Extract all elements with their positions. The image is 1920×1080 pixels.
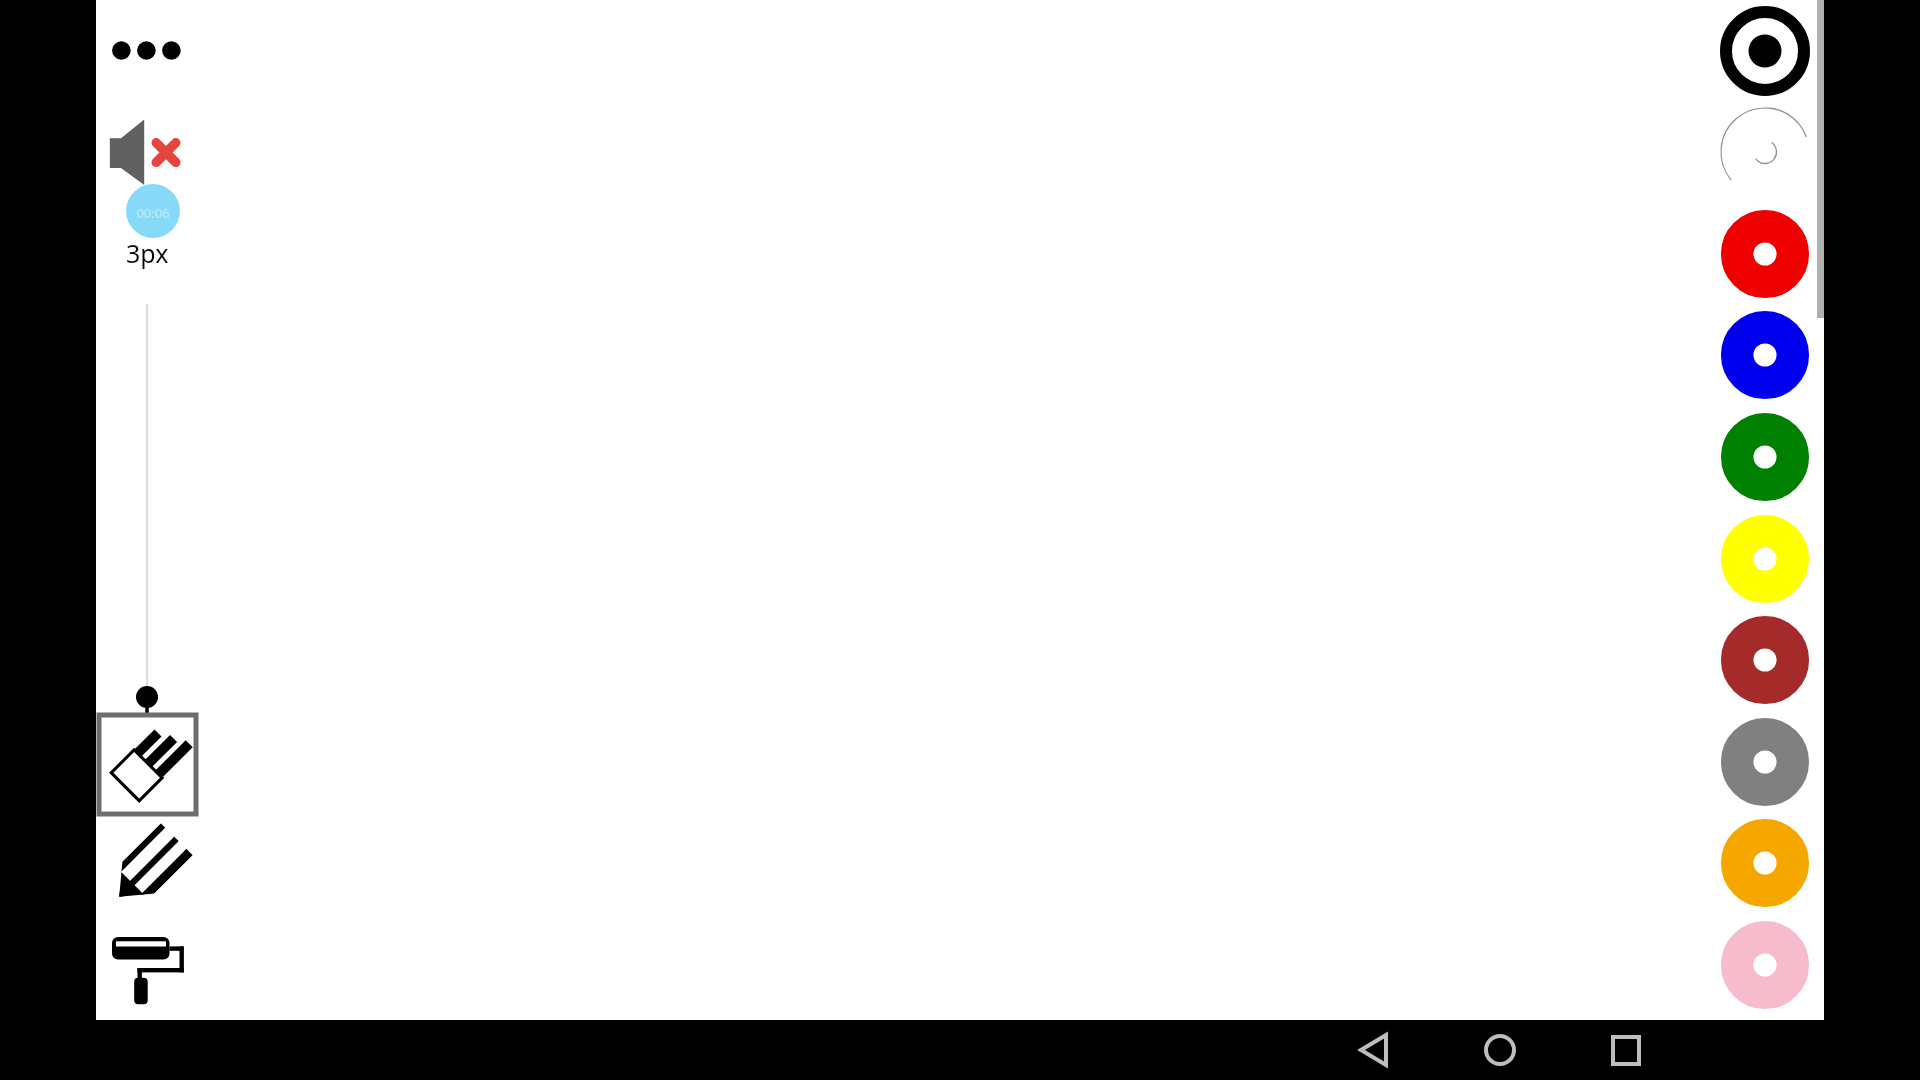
button[interactable]: More options <box>109 33 185 68</box>
button[interactable]: Color 7 <box>1715 712 1815 812</box>
button[interactable]: Home <box>1460 1020 1540 1080</box>
staticText: 00:06 <box>136 204 170 222</box>
button[interactable]: Pencil tool <box>103 823 193 913</box>
button[interactable]: Recording timer <box>126 184 180 238</box>
button[interactable]: Color 3 <box>1715 305 1815 405</box>
button[interactable]: Color 4 <box>1715 407 1815 507</box>
button[interactable]: Color 0 <box>1715 1 1815 101</box>
button[interactable]: Back <box>1333 1020 1413 1080</box>
button[interactable]: Recents <box>1586 1020 1666 1080</box>
button[interactable]: Paint roller tool <box>112 937 188 1007</box>
button[interactable]: Color 1 <box>1715 102 1815 202</box>
button[interactable]: Color 9 <box>1715 915 1815 1015</box>
staticText: 3px <box>126 236 169 270</box>
button[interactable]: Mute sound <box>108 117 186 189</box>
button[interactable]: Color 6 <box>1715 610 1815 710</box>
button[interactable]: Color 2 <box>1715 204 1815 304</box>
button[interactable]: Color 8 <box>1715 813 1815 913</box>
button[interactable]: Brush size slider <box>135 300 159 720</box>
button[interactable]: Color 5 <box>1715 509 1815 609</box>
button[interactable]: Eraser tool <box>99 715 196 814</box>
